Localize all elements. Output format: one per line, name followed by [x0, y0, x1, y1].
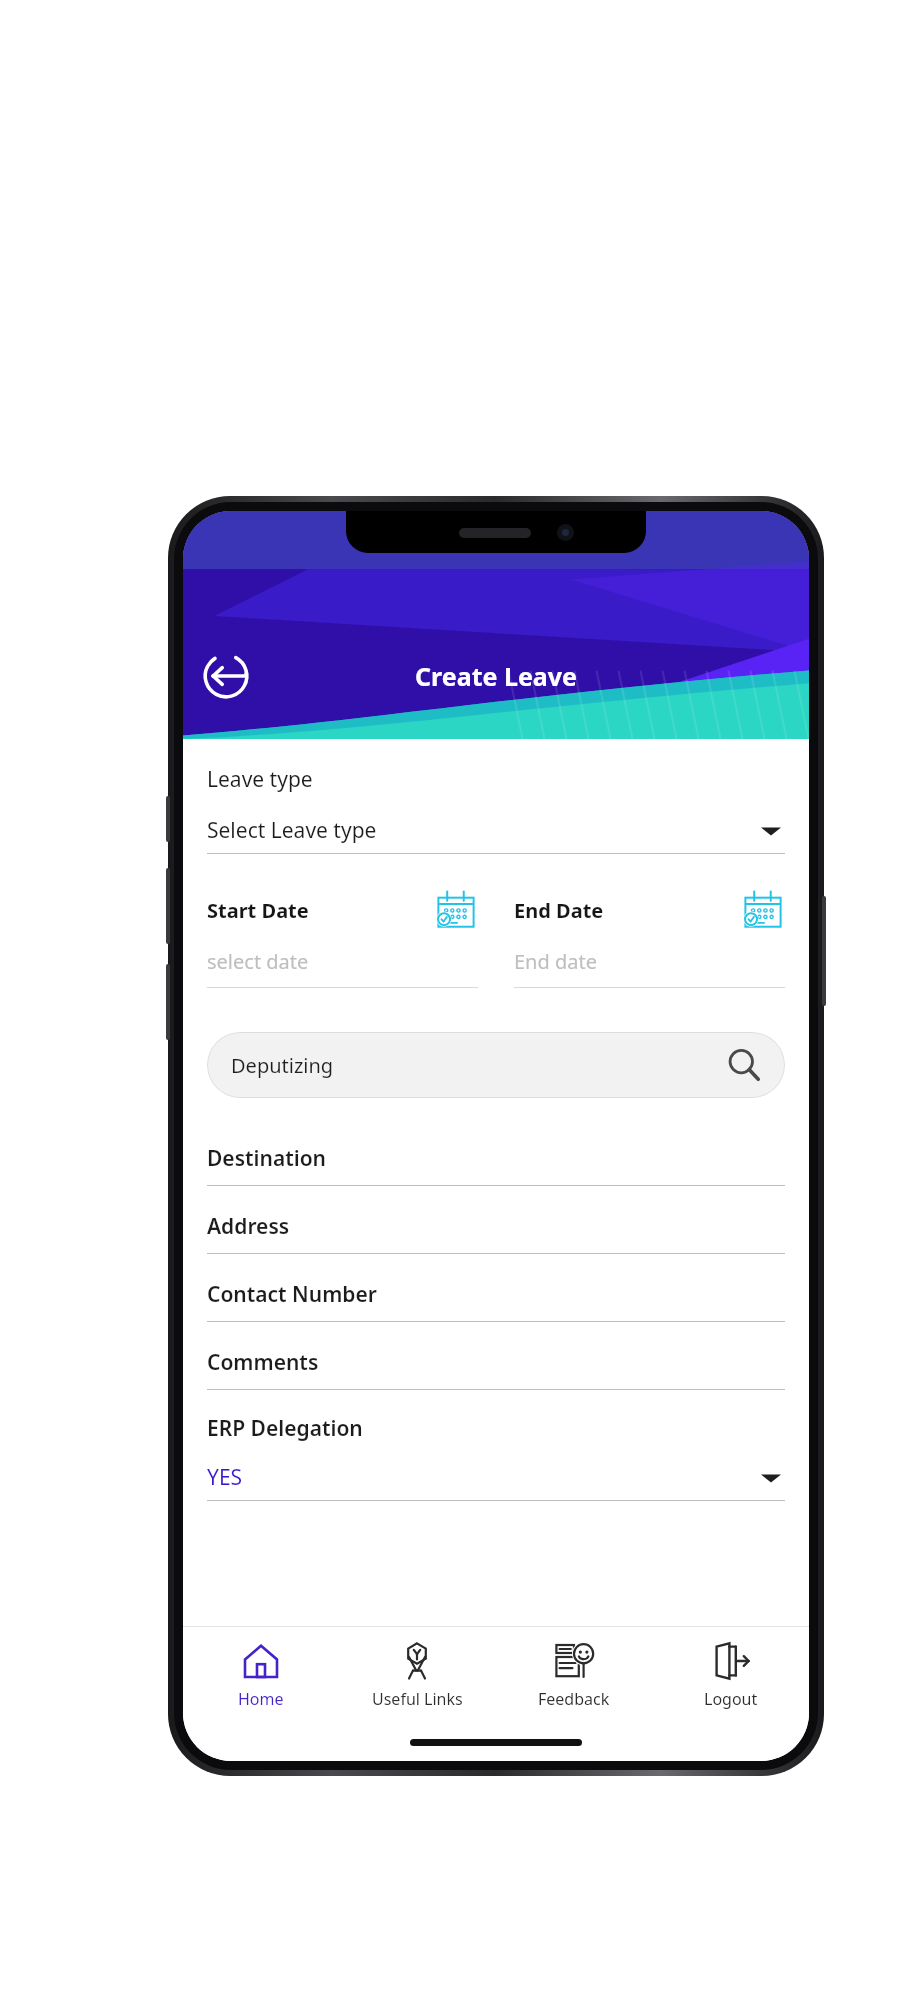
staticText: Feedback — [538, 1688, 610, 1710]
button[interactable]: Home — [183, 1627, 339, 1723]
button[interactable]: Feedback — [495, 1627, 652, 1723]
button[interactable]: Deputizing — [207, 1032, 785, 1098]
button[interactable]: Address — [207, 1212, 785, 1254]
staticText: YES — [207, 1463, 243, 1492]
staticText: select date — [207, 948, 309, 975]
staticText: Leave type — [207, 765, 313, 794]
button[interactable]: Back — [199, 649, 253, 703]
button[interactable]: Logout — [652, 1627, 809, 1723]
button[interactable]: Select Leave type — [207, 816, 785, 845]
staticText: Address — [207, 1212, 290, 1241]
staticText: Useful Links — [372, 1688, 463, 1710]
button[interactable]: YES — [207, 1463, 785, 1492]
staticText: Destination — [207, 1144, 326, 1173]
staticText: Start Date — [207, 897, 309, 924]
other: Pick date — [741, 888, 785, 932]
staticText: Logout — [704, 1688, 758, 1710]
staticText: Contact Number — [207, 1280, 377, 1309]
button[interactable]: Contact Number — [207, 1280, 785, 1322]
button[interactable]: End Date — [514, 888, 785, 988]
staticText: ERP Delegation — [207, 1414, 363, 1443]
staticText: Comments — [207, 1348, 319, 1377]
other: Pick date — [434, 888, 478, 932]
button[interactable]: Start Date — [207, 888, 478, 988]
staticText: Deputizing — [231, 1052, 334, 1079]
staticText: Home — [238, 1688, 284, 1710]
button[interactable]: Useful Links — [339, 1627, 495, 1723]
button[interactable]: Destination — [207, 1144, 785, 1186]
staticText: Select Leave type — [207, 816, 377, 845]
button[interactable]: Comments — [207, 1348, 785, 1390]
staticText: End date — [514, 948, 597, 975]
staticText: End Date — [514, 897, 604, 924]
staticText: Create Leave — [415, 659, 577, 693]
